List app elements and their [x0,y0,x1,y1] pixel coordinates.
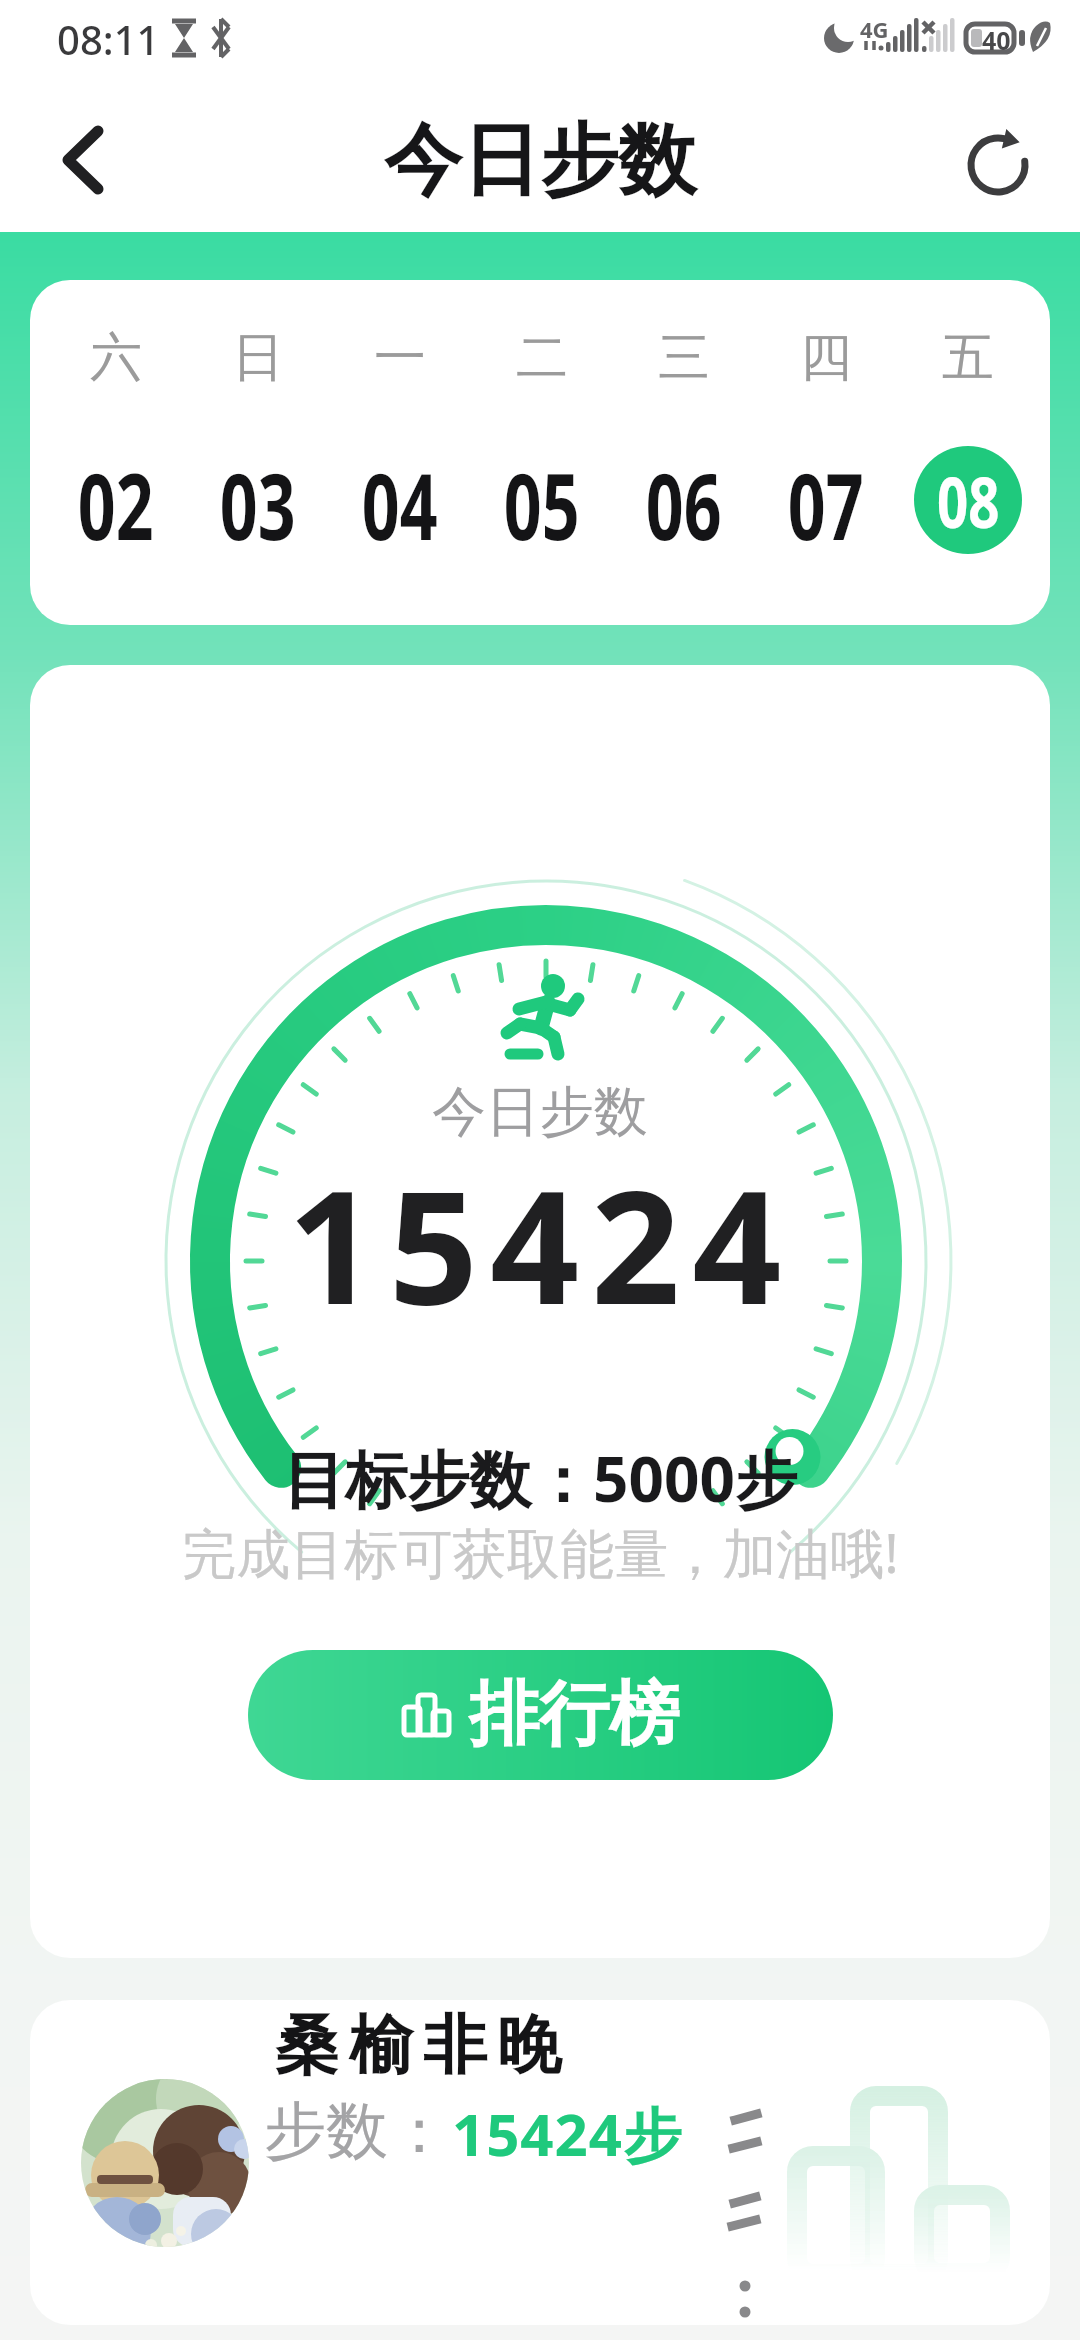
staticText: 完成目标可获取能量，加油哦! [182,1515,899,1589]
staticText: 03 [220,442,296,557]
button[interactable] [40,115,130,205]
button[interactable]: 桑榆非晚 [30,2000,1050,2325]
staticText: 一 [374,325,426,391]
button[interactable]: 05 [471,442,613,557]
staticText: 排行榜 [469,1671,679,1759]
button[interactable]: 04 [329,442,471,557]
staticText: 目标步数：5000步 [283,1436,797,1521]
staticText: 今日步数 [384,112,696,210]
button[interactable]: 排行榜 [248,1650,833,1780]
staticText: 08 [937,453,1000,548]
staticText: 04 [362,442,438,557]
button[interactable]: 02 [45,442,187,557]
staticText: 05 [504,442,580,557]
button[interactable]: 06 [613,442,755,557]
staticText: 4G [860,14,889,44]
staticText: 07 [788,442,864,557]
button[interactable]: 07 [755,442,897,557]
staticText: 二 [516,325,568,391]
staticText: 06 [646,442,722,557]
button[interactable]: 08 [897,442,1039,557]
staticText: 40 [982,23,1011,53]
button[interactable] [950,115,1040,205]
staticText: 15424 [287,1137,794,1349]
staticText: 02 [78,442,154,557]
staticText: 今日步数 [432,1078,648,1146]
staticText: 五 [942,325,994,391]
staticText: 桑榆非晚 [270,2005,566,2086]
staticText: 日 [232,325,284,391]
staticText: 六 [90,325,142,391]
staticText: 步数： [264,2092,450,2170]
staticText: 08:11 [57,12,160,66]
staticText: 三 [658,325,710,391]
staticText: 15424步 [452,2094,682,2173]
button[interactable]: 03 [187,442,329,557]
staticText: 四 [800,325,852,391]
